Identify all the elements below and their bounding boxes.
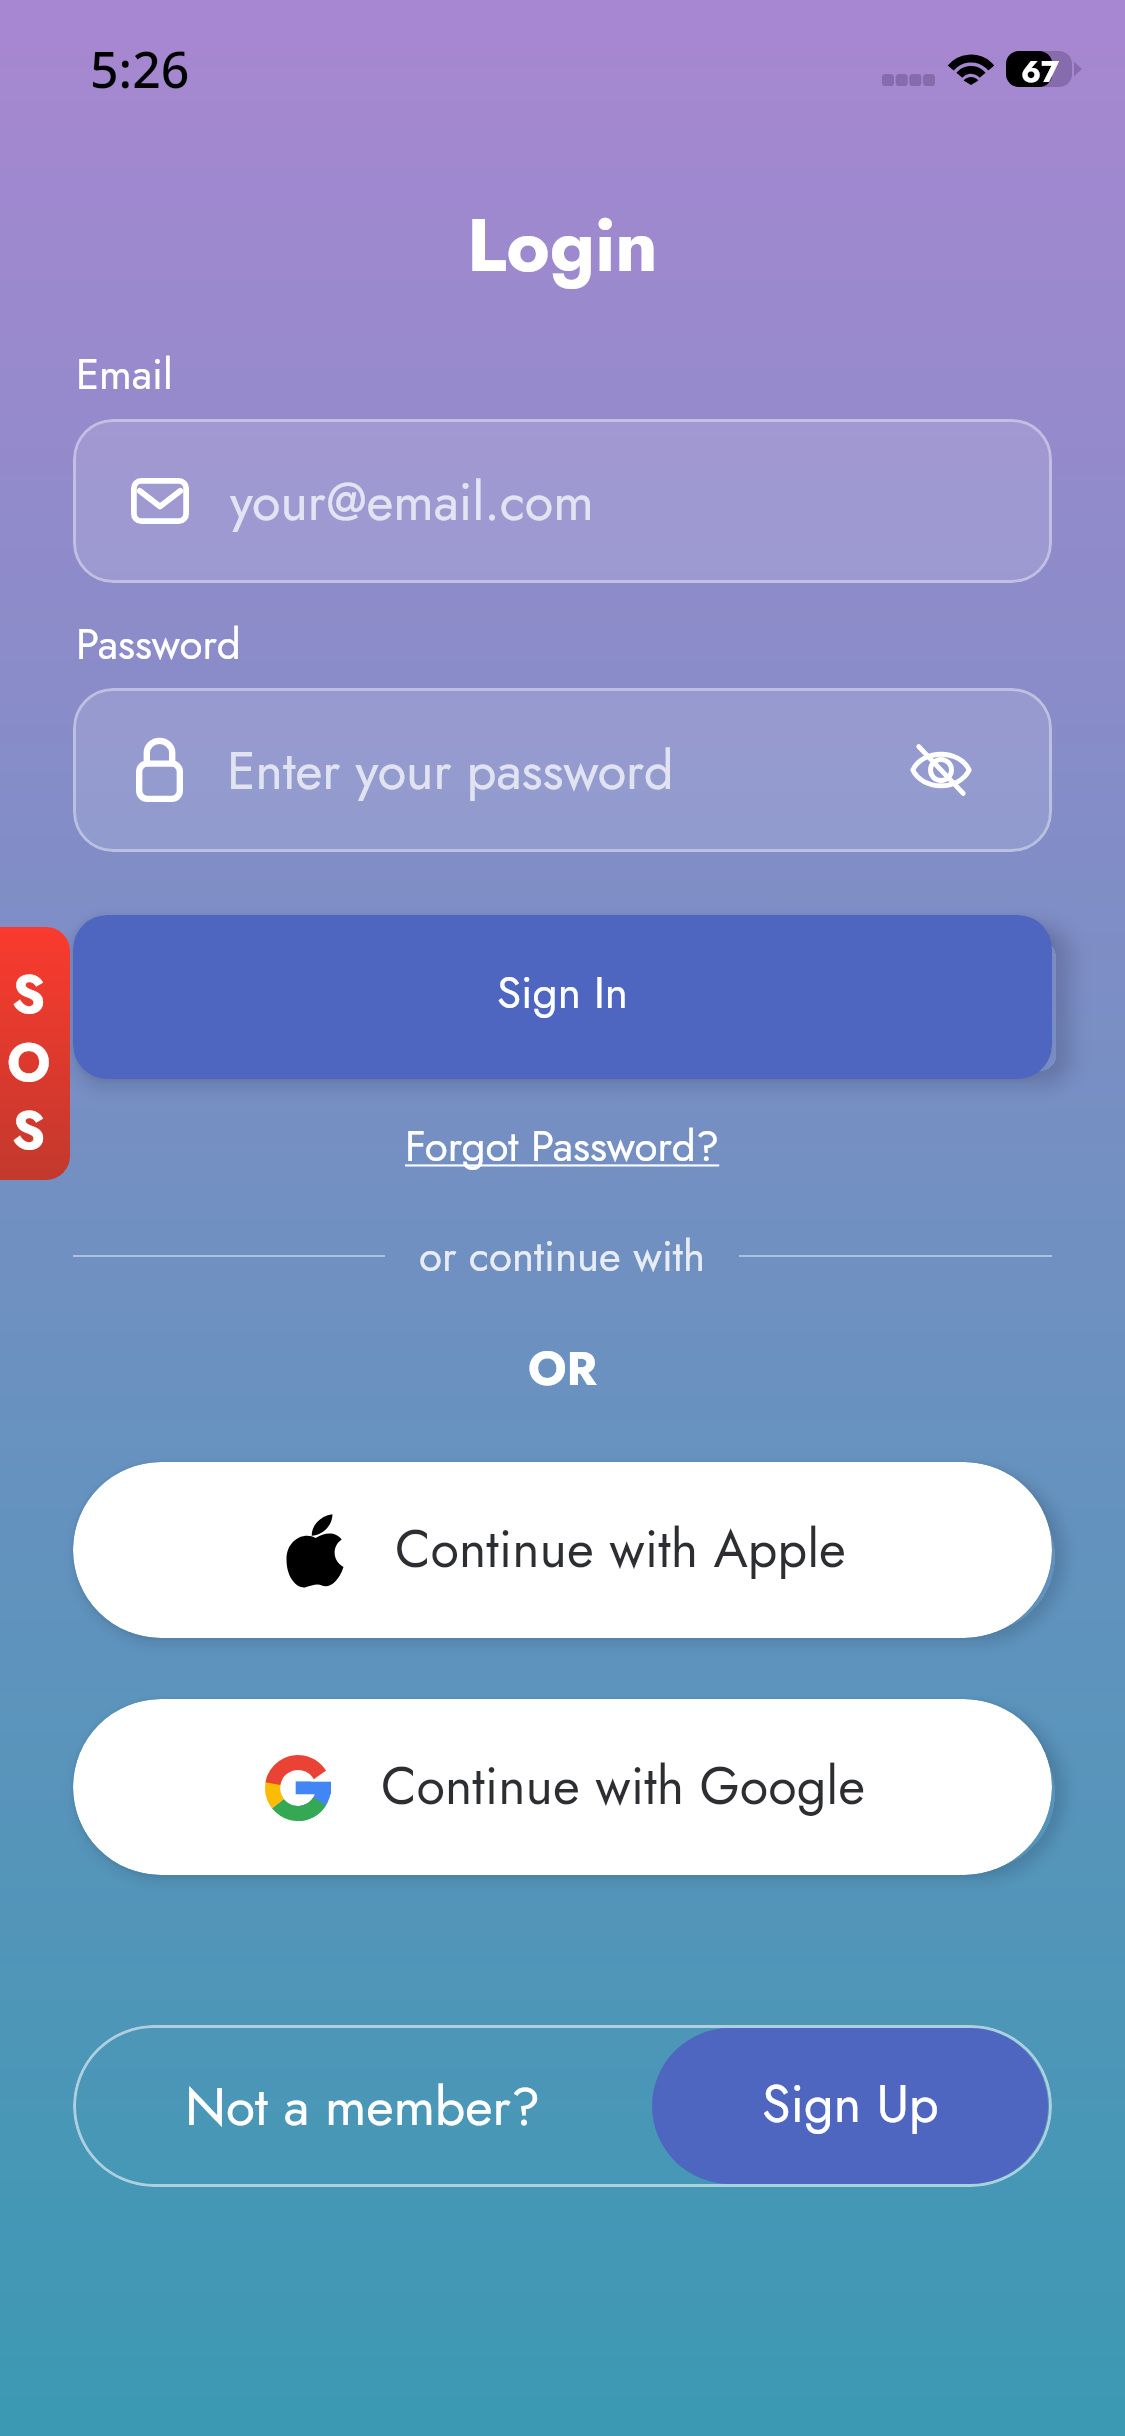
staticText: Continue with Apple: [395, 1511, 846, 1586]
button[interactable]: your@email.com: [73, 419, 1052, 583]
staticText: Forgot Password?: [405, 1116, 720, 1177]
staticText: Password: [76, 614, 241, 675]
button[interactable]: Forgot Password?: [381, 1104, 744, 1189]
button[interactable]: Sign Up: [652, 2028, 1048, 2184]
button[interactable]: Not a member?: [73, 2025, 652, 2187]
staticText: Email: [76, 344, 173, 405]
button[interactable]: SOS emergency: [0, 927, 70, 1180]
staticText: or continue with: [419, 1226, 705, 1286]
button[interactable]: Continue with Google: [73, 1699, 1052, 1875]
staticText: OR: [528, 1335, 597, 1403]
staticText: Enter your password: [227, 733, 674, 808]
staticText: Sign In: [497, 961, 628, 1025]
staticText: S: [12, 1092, 46, 1169]
staticText: S: [12, 956, 46, 1033]
button[interactable]: Show password: [895, 728, 987, 812]
staticText: Not a member?: [185, 2068, 541, 2145]
staticText: Login: [467, 192, 658, 299]
staticText: Sign Up: [762, 2066, 939, 2141]
staticText: Continue with Google: [381, 1748, 866, 1823]
button[interactable]: Continue with Apple: [73, 1462, 1052, 1638]
staticText: 5:26: [90, 35, 190, 103]
staticText: 67: [1021, 50, 1060, 86]
button[interactable]: Sign In: [73, 915, 1052, 1079]
button[interactable]: Enter your password: [73, 688, 1052, 852]
staticText: your@email.com: [230, 464, 594, 539]
staticText: O: [7, 1024, 51, 1101]
